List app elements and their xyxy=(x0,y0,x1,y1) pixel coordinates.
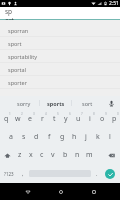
staticText: ?123 xyxy=(4,171,14,177)
staticText: . xyxy=(96,170,98,177)
button[interactable]: c xyxy=(36,146,47,164)
button[interactable]: r xyxy=(36,110,48,128)
button[interactable]: l xyxy=(104,128,116,146)
button[interactable]: y xyxy=(60,110,72,128)
button[interactable]: f xyxy=(43,128,56,146)
button[interactable]: k xyxy=(92,128,104,146)
staticText: 6 xyxy=(69,112,71,116)
staticText: f xyxy=(48,132,51,142)
staticText: sorry xyxy=(17,100,31,107)
staticText: sporter xyxy=(8,79,27,86)
staticText: n xyxy=(75,150,80,160)
button[interactable]: Search xyxy=(103,164,120,183)
staticText: a xyxy=(9,132,13,142)
button[interactable]: g xyxy=(56,128,68,146)
staticText: r xyxy=(41,114,44,124)
button[interactable]: . xyxy=(91,164,103,183)
button[interactable]: n xyxy=(71,146,83,164)
button[interactable]: h xyxy=(68,128,80,146)
button[interactable]: sportal xyxy=(0,63,120,76)
staticText: 2 xyxy=(21,112,23,116)
button[interactable]: sports xyxy=(40,96,71,110)
button[interactable]: b xyxy=(59,146,71,164)
button[interactable]: sportability xyxy=(0,50,120,63)
button[interactable]: w xyxy=(12,110,24,128)
staticText: 5 xyxy=(57,112,59,116)
staticText: z xyxy=(18,150,22,160)
button[interactable]: v xyxy=(47,146,59,164)
staticText: m xyxy=(86,150,93,160)
staticText: g xyxy=(60,132,65,142)
staticText: i xyxy=(89,114,91,124)
button[interactable]: sporter xyxy=(0,76,120,89)
button[interactable]: ?123 xyxy=(0,164,17,183)
staticText: sporran xyxy=(8,27,29,34)
staticText: v xyxy=(51,150,55,160)
button[interactable]: , xyxy=(17,164,29,183)
button[interactable]: q xyxy=(0,110,12,128)
staticText: 7 xyxy=(81,112,83,116)
button[interactable]: sort xyxy=(72,96,103,110)
button[interactable]: m xyxy=(83,146,95,164)
staticText: 1 xyxy=(9,112,11,116)
staticText: 0 xyxy=(117,112,119,116)
button[interactable]: e xyxy=(24,110,36,128)
staticText: y xyxy=(64,114,68,124)
staticText: 8 xyxy=(93,112,95,116)
button[interactable]: Home xyxy=(44,183,77,200)
staticText: t xyxy=(53,114,56,124)
button[interactable]: o xyxy=(96,110,108,128)
staticText: sport xyxy=(5,7,16,20)
button[interactable]: sport xyxy=(0,37,120,50)
staticText: 2:51 xyxy=(109,0,119,7)
staticText: u xyxy=(76,114,81,124)
staticText: 9 xyxy=(105,112,107,116)
staticText: o xyxy=(100,114,105,124)
button[interactable]: t xyxy=(48,110,60,128)
button[interactable]: Recents xyxy=(77,183,110,200)
staticText: l xyxy=(109,132,111,142)
staticText: sportability xyxy=(8,53,38,60)
button[interactable]: a xyxy=(4,128,17,146)
staticText: sports xyxy=(47,100,65,107)
staticText: 3 xyxy=(33,112,35,116)
button[interactable]: j xyxy=(80,128,92,146)
button[interactable]: p xyxy=(108,110,120,128)
staticText: sport xyxy=(8,40,22,47)
staticText: sort xyxy=(82,100,93,107)
staticText: c xyxy=(40,150,44,160)
button[interactable]: sorry xyxy=(8,96,39,110)
button[interactable]: i xyxy=(84,110,96,128)
staticText: e xyxy=(28,114,32,124)
button[interactable]: Voice input xyxy=(103,96,120,110)
button[interactable]: Backspace xyxy=(95,146,120,164)
button[interactable]: s xyxy=(17,128,30,146)
button[interactable]: sporran xyxy=(0,24,120,37)
staticText: q xyxy=(4,114,9,124)
staticText: h xyxy=(72,132,77,142)
staticText: sportal xyxy=(8,66,27,73)
staticText: d xyxy=(34,132,39,142)
staticText: x xyxy=(29,150,33,160)
button[interactable]: z xyxy=(14,146,25,164)
staticText: k xyxy=(96,132,100,142)
button[interactable]: u xyxy=(72,110,84,128)
button[interactable]: x xyxy=(25,146,36,164)
button[interactable]: d xyxy=(30,128,43,146)
staticText: j xyxy=(85,132,87,142)
staticText: b xyxy=(63,150,68,160)
staticText: p xyxy=(112,114,117,124)
button[interactable]: Back xyxy=(11,183,44,200)
staticText: , xyxy=(22,170,24,177)
staticText: w xyxy=(15,114,21,124)
button[interactable]: Shift xyxy=(0,146,14,164)
staticText: s xyxy=(22,132,26,142)
staticText: 4 xyxy=(45,112,47,116)
